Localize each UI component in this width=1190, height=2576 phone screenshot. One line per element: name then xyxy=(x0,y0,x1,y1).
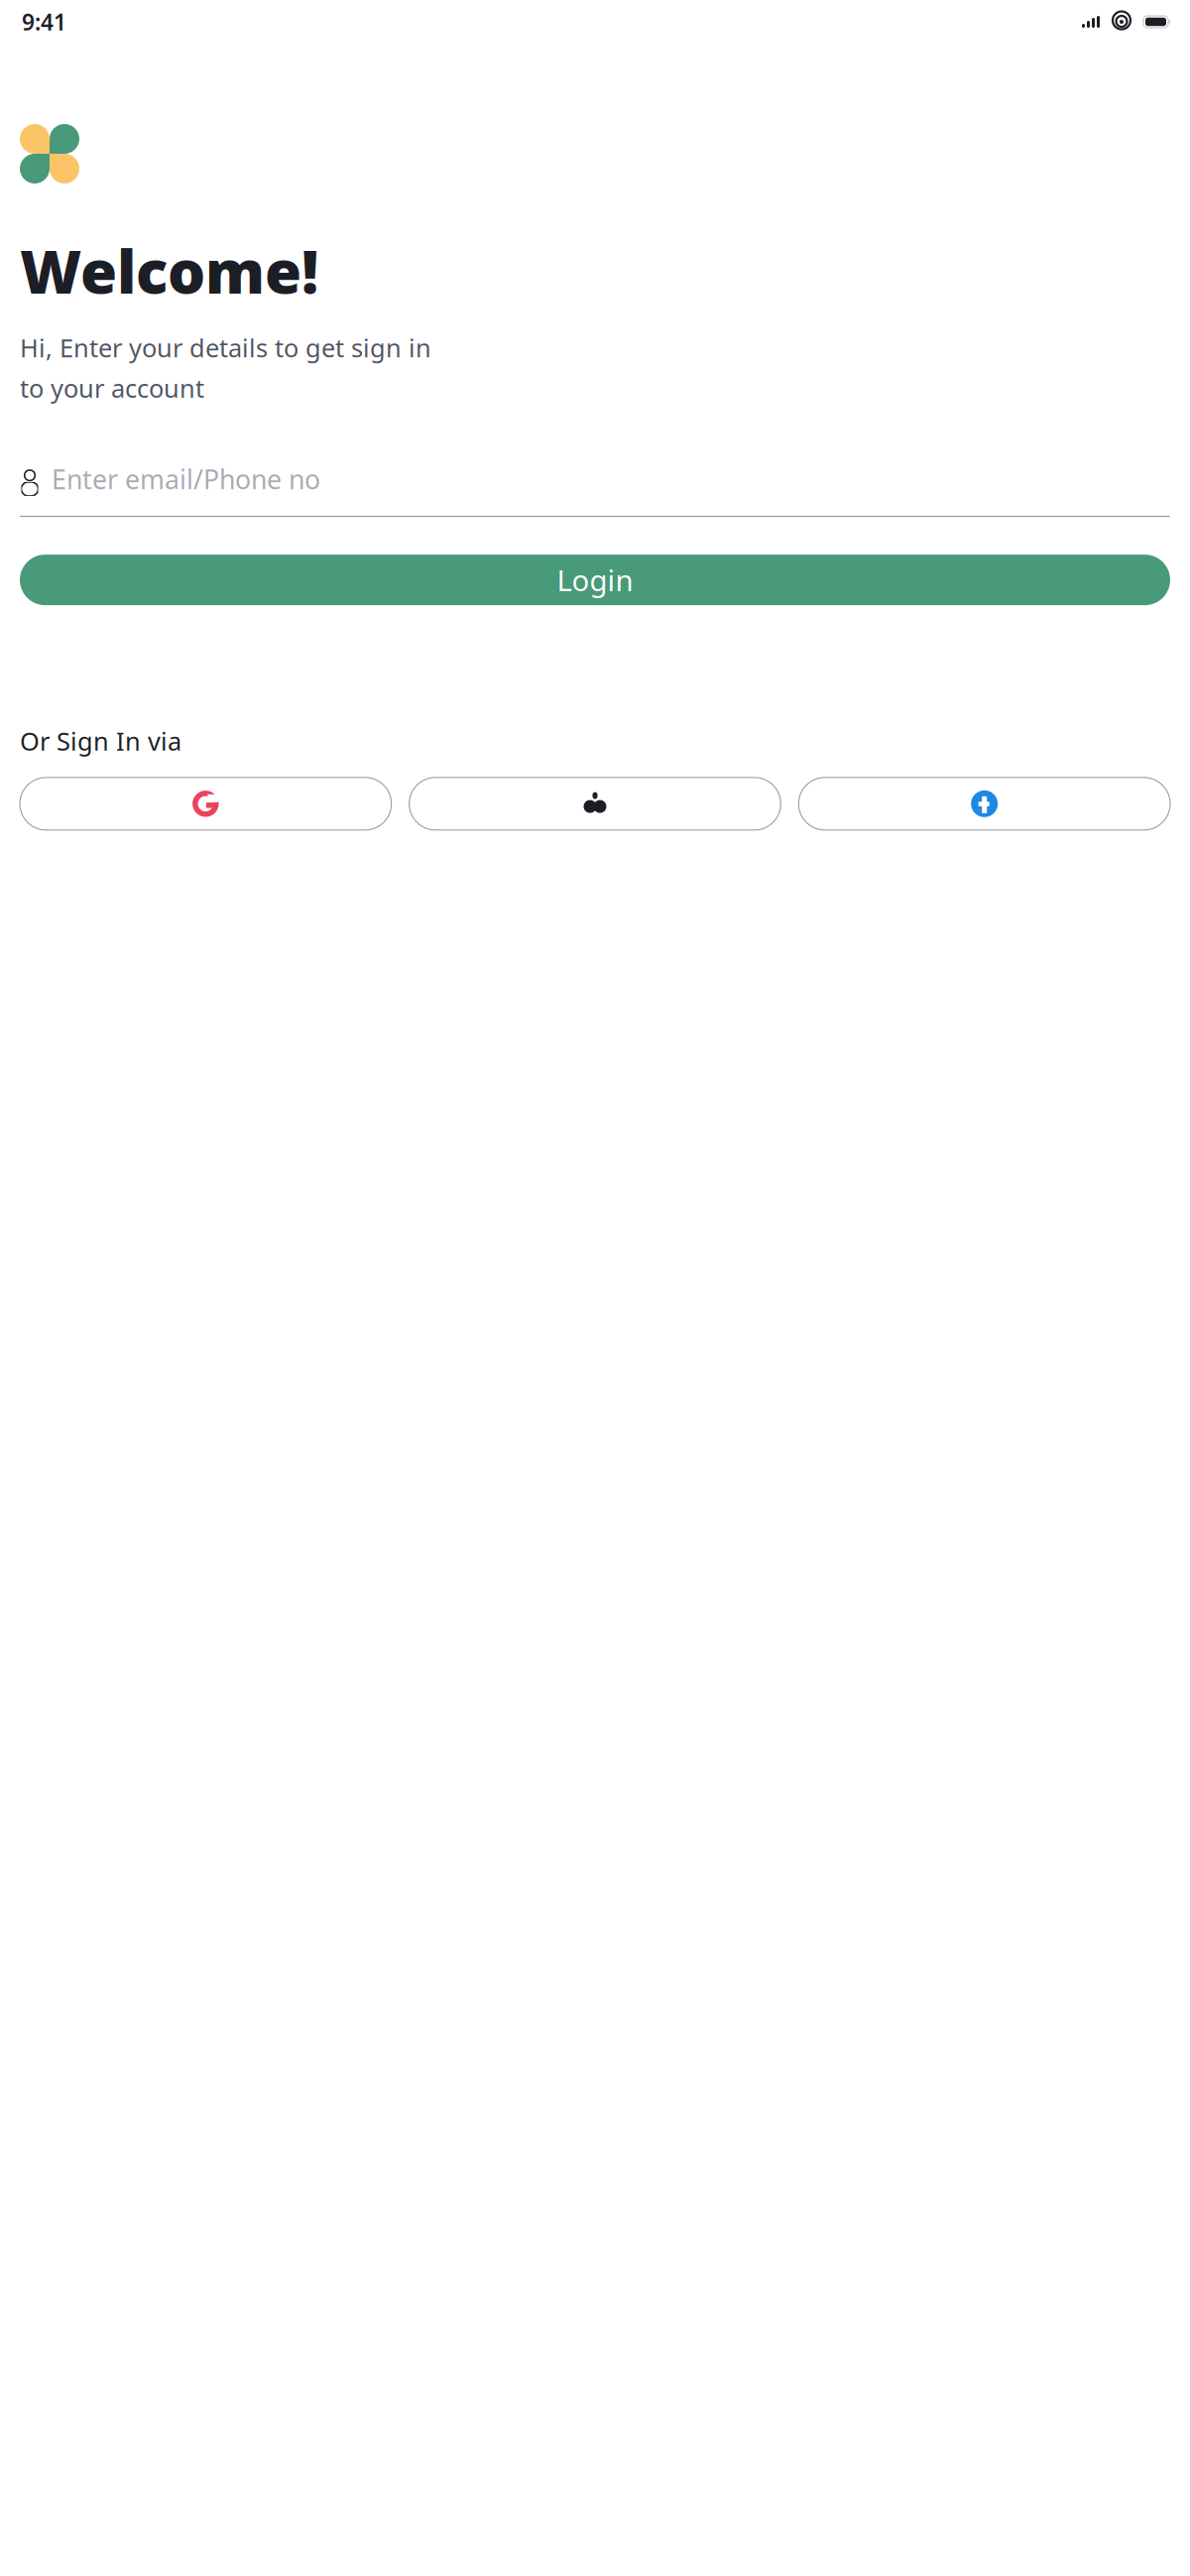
staticText: Login xyxy=(557,561,633,599)
staticText: Welcome! xyxy=(20,231,318,310)
staticText: Or Sign In via xyxy=(20,724,181,758)
button[interactable]: Sign in with Facebook xyxy=(799,777,1170,830)
button[interactable]: Sign in with Google xyxy=(20,777,391,830)
staticText: to your account xyxy=(20,371,204,405)
button[interactable]: Sign in with Apple xyxy=(409,777,781,830)
staticText: Enter email/Phone no xyxy=(52,462,320,497)
staticText: 9:41 xyxy=(22,7,66,37)
staticText: Hi, Enter your details to get sign in xyxy=(20,331,431,364)
button[interactable]: Login xyxy=(20,555,1170,605)
